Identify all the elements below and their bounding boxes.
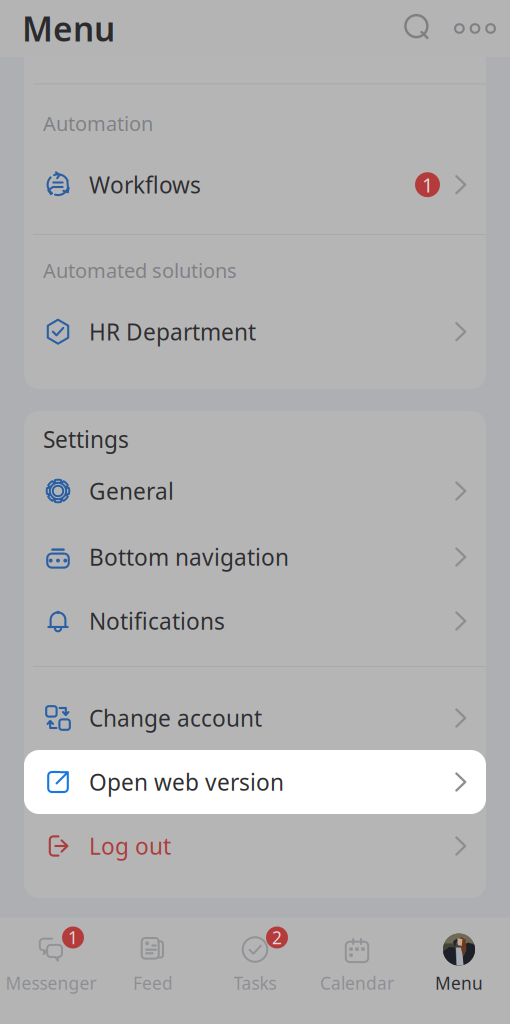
button[interactable]: Bottom navigation [24,525,486,589]
button[interactable]: General [24,459,486,523]
button[interactable]: Change account [24,686,486,750]
staticText: Automated solutions [43,257,237,284]
staticText: Feed [133,971,173,994]
staticText: General [89,476,174,506]
staticText: Menu [435,971,483,994]
button[interactable]: Log out [24,814,486,878]
staticText: Log out [89,831,171,861]
button[interactable]: More options [444,0,506,57]
staticText: Workflows [89,170,201,200]
staticText: 1 [422,171,433,198]
button[interactable]: Notifications [24,589,486,653]
staticText: 2 [272,926,282,949]
button[interactable]: Feed [102,917,204,1024]
staticText: Automation [43,110,153,137]
staticText: Notifications [89,606,225,636]
staticText: 1 [68,926,78,949]
staticText: Change account [89,703,262,733]
button[interactable]: Search [392,0,444,57]
staticText: Calendar [320,971,394,994]
staticText: Menu [22,6,115,51]
button[interactable]: 1 [0,917,102,1024]
staticText: Settings [43,424,129,454]
button[interactable]: Open web version [24,750,486,814]
staticText: Messenger [5,971,96,994]
staticText: HR Department [89,317,256,347]
button[interactable]: 2 [204,917,306,1024]
staticText: Open web version [89,767,284,797]
button[interactable]: Workflows [24,153,486,217]
button[interactable]: Calendar [306,917,408,1024]
button[interactable]: HR Department [24,300,486,364]
staticText: Bottom navigation [89,542,289,572]
button[interactable]: Menu [408,917,510,1024]
staticText: Tasks [233,971,276,994]
